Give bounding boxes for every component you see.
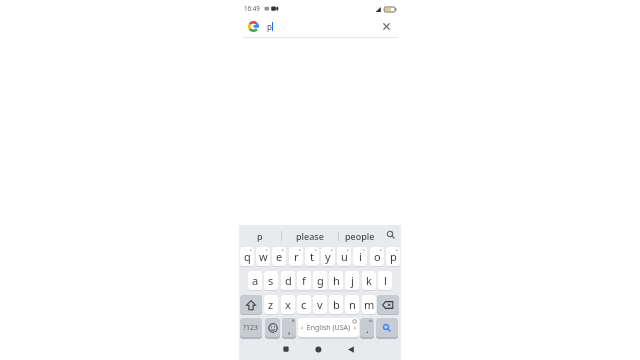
button[interactable]: l	[378, 271, 392, 290]
staticText: c	[301, 297, 307, 312]
staticText: please	[296, 230, 324, 242]
staticText: v	[317, 297, 323, 312]
button[interactable]: please	[281, 229, 338, 242]
button[interactable]: z	[264, 295, 278, 314]
button[interactable]: people	[338, 229, 382, 242]
staticText: q	[244, 249, 251, 264]
staticText: h	[333, 273, 340, 288]
staticText: f	[302, 273, 306, 288]
staticText: p	[257, 230, 263, 242]
button[interactable]	[380, 20, 393, 33]
button[interactable]: b	[329, 295, 343, 314]
button[interactable]: n	[345, 295, 359, 314]
staticText: m	[364, 297, 375, 312]
button[interactable]: j	[345, 271, 359, 290]
staticText: i	[359, 249, 362, 264]
staticText: d	[285, 273, 292, 288]
button[interactable]: q	[240, 247, 254, 266]
staticText: s	[268, 273, 274, 288]
staticText: u	[341, 249, 348, 264]
button[interactable]	[344, 343, 356, 355]
staticText: .	[366, 322, 369, 336]
staticText: e	[276, 249, 283, 264]
staticText: ?123	[243, 323, 259, 333]
staticText: o	[374, 249, 381, 264]
staticText: b	[333, 297, 340, 312]
button[interactable]: v	[313, 295, 327, 314]
staticText: ,	[288, 323, 291, 337]
staticText: g	[317, 273, 324, 288]
button[interactable]: ,	[282, 318, 296, 337]
button[interactable]: u	[337, 247, 351, 266]
button[interactable]: p	[386, 247, 400, 266]
staticText: j	[351, 273, 354, 288]
button[interactable]: k	[362, 271, 376, 290]
staticText: r	[294, 249, 299, 264]
button[interactable]: x	[281, 295, 295, 314]
staticText: n	[349, 297, 356, 312]
button[interactable]: w	[256, 247, 270, 266]
button[interactable]: d	[281, 271, 295, 290]
button[interactable]: o	[370, 247, 384, 266]
button[interactable]	[376, 318, 398, 337]
staticText: l	[384, 273, 387, 288]
button[interactable]: e	[272, 247, 286, 266]
button[interactable]	[265, 318, 280, 337]
staticText: w	[259, 249, 268, 264]
staticText: x	[285, 297, 291, 312]
button[interactable]: c	[297, 295, 311, 314]
staticText: k	[366, 273, 372, 288]
staticText: people	[345, 230, 375, 242]
button[interactable]: a	[248, 271, 262, 290]
button[interactable]	[312, 343, 324, 355]
staticText: z	[268, 297, 274, 312]
staticText: t	[310, 249, 314, 264]
button[interactable]: ?123	[240, 318, 262, 337]
button[interactable]: h	[329, 271, 343, 290]
button[interactable]	[240, 295, 262, 314]
staticText: ‹ English (USA) ›	[301, 323, 356, 333]
button[interactable]: r	[289, 247, 303, 266]
staticText: 16:49	[244, 4, 260, 12]
button[interactable]: f	[297, 271, 311, 290]
staticText: p	[267, 21, 272, 32]
button[interactable]: s	[264, 271, 278, 290]
button[interactable]	[377, 295, 399, 314]
button[interactable]	[384, 228, 398, 242]
button[interactable]: t	[305, 247, 319, 266]
button[interactable]: y	[321, 247, 335, 266]
staticText: p	[390, 249, 397, 264]
staticText: a	[252, 273, 259, 288]
button[interactable]: m	[362, 295, 376, 314]
button[interactable]: i	[353, 247, 367, 266]
button[interactable]: ‹ English (USA) ›	[298, 318, 359, 337]
staticText: y	[325, 249, 331, 264]
button[interactable]: .	[360, 318, 374, 337]
button[interactable]: p	[239, 229, 281, 242]
button[interactable]: g	[313, 271, 327, 290]
button[interactable]	[280, 343, 292, 355]
